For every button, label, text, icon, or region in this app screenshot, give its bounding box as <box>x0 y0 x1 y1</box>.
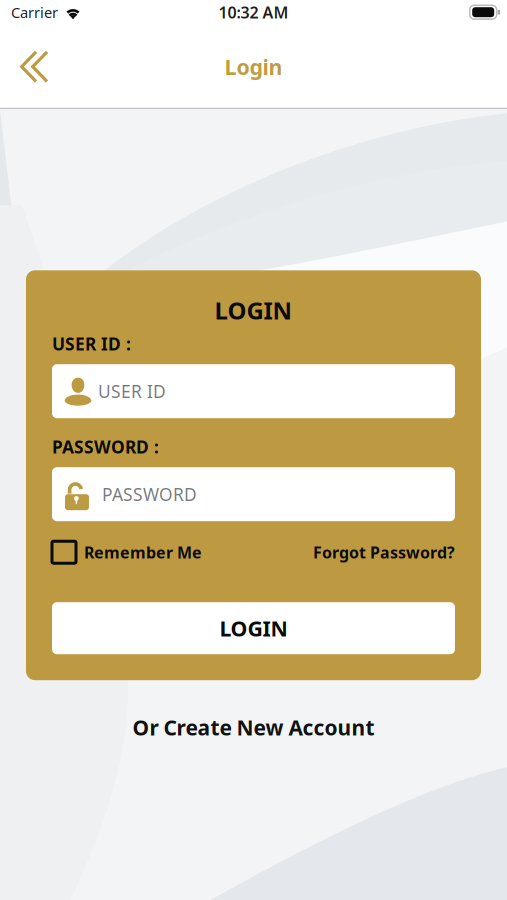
button[interactable]: Back <box>0 26 63 107</box>
staticText: 10:32 AM <box>218 2 288 23</box>
button[interactable]: Forgot Password? <box>313 542 455 563</box>
staticText: Forgot Password? <box>313 542 455 563</box>
staticText: LOGIN <box>219 614 287 642</box>
staticText: USER ID : <box>52 332 131 355</box>
staticText: LOGIN <box>214 294 292 326</box>
button[interactable]: Remember Me <box>52 541 202 563</box>
staticText: PASSWORD : <box>52 435 159 458</box>
staticText: PASSWORD <box>102 483 197 506</box>
staticText: Or Create New Account <box>132 713 374 742</box>
button[interactable]: Or Create New Account <box>112 680 394 752</box>
staticText: Remember Me <box>84 542 202 563</box>
staticText: Login <box>224 52 282 81</box>
staticText: USER ID <box>98 380 166 403</box>
staticText: Carrier <box>11 2 58 22</box>
button[interactable]: LOGIN <box>52 602 455 654</box>
